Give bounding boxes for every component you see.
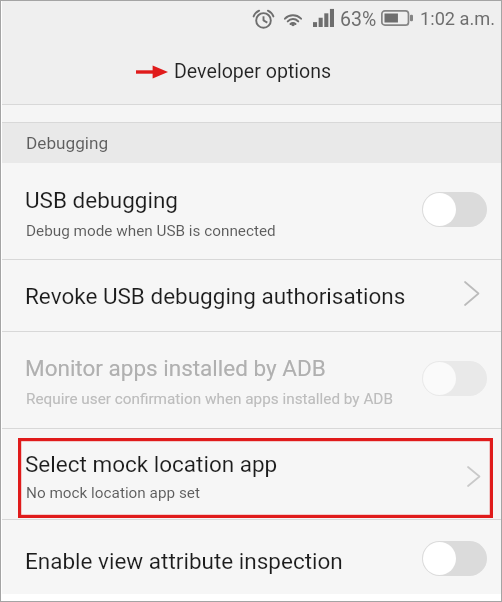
staticText: Developer options — [174, 60, 332, 83]
staticText: Select mock location app — [25, 451, 278, 477]
button[interactable]: USB debugging — [2, 163, 501, 259]
staticText: Revoke USB debugging authorisations — [25, 283, 406, 309]
button[interactable]: Revoke USB debugging authorisations — [2, 260, 501, 331]
button[interactable]: Toggle Enable view attribute inspection — [422, 541, 487, 576]
button[interactable]: Select mock location app — [2, 429, 501, 519]
button[interactable]: Monitor apps installed by ADB — [2, 332, 501, 428]
button[interactable]: Enable view attribute inspection — [2, 520, 501, 594]
staticText: USB debugging — [25, 187, 179, 213]
staticText: Monitor apps installed by ADB — [25, 355, 326, 381]
staticText: No mock location app set — [26, 484, 200, 502]
staticText: Debug mode when USB is connected — [26, 222, 276, 240]
button[interactable]: Toggle USB debugging — [422, 192, 487, 227]
staticText: 1:02 a.m. — [420, 8, 496, 29]
staticText: Enable view attribute inspection — [25, 548, 343, 574]
button[interactable]: Toggle Monitor apps installed by ADB — [422, 361, 487, 396]
button[interactable]: Open Revoke USB debugging authorisations — [464, 281, 480, 306]
staticText: 63% — [340, 8, 377, 31]
button[interactable]: Open Select mock location app — [467, 466, 481, 487]
staticText: Require user confirmation when apps inst… — [26, 390, 393, 408]
staticText: Debugging — [26, 133, 109, 153]
